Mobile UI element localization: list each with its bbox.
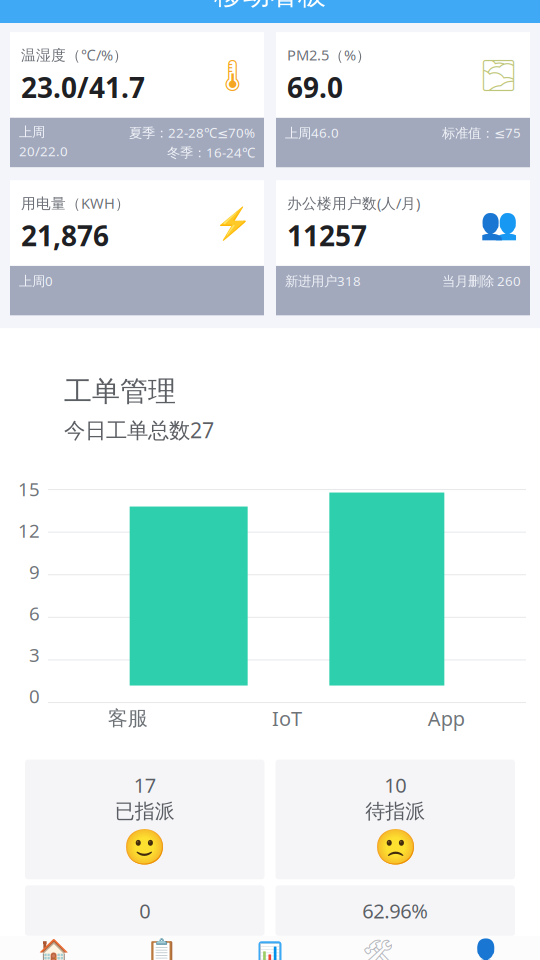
staticText: 23.0/41.7 — [21, 69, 145, 106]
button[interactable]: 📋 — [108, 935, 216, 960]
button[interactable]: 📊 — [216, 935, 324, 960]
staticText: 移动看板 — [214, 0, 326, 12]
staticText: 3 — [29, 642, 40, 667]
button[interactable]: 办公楼用户数(人/月) — [276, 180, 530, 315]
staticText: 6 — [29, 601, 40, 626]
staticText: 工单管理 — [64, 374, 176, 409]
staticText: 夏季：22-28℃≤70% — [129, 124, 255, 141]
staticText: 📋 — [146, 938, 178, 960]
staticText: 15 — [18, 477, 40, 501]
staticText: PM2.5（%） — [287, 45, 371, 65]
staticText: 11257 — [287, 217, 367, 254]
staticText: 上周46.0 — [285, 124, 339, 141]
button[interactable]: 👤 — [432, 935, 540, 960]
staticText: 21,876 — [21, 217, 109, 254]
button[interactable]: PM2.5（%） — [276, 32, 530, 167]
button[interactable]: 17 — [25, 760, 264, 879]
staticText: 12 — [18, 518, 40, 543]
staticText: 20/22.0 — [19, 142, 68, 160]
staticText: 0 — [29, 684, 40, 708]
staticText: 冬季：16-24℃ — [167, 143, 255, 161]
staticText: 🌡 — [213, 58, 252, 93]
staticText: App — [428, 705, 465, 732]
staticText: 69.0 — [287, 69, 343, 106]
staticText: 🏠 — [38, 938, 70, 960]
staticText: 温湿度（℃/%） — [21, 45, 128, 65]
staticText: 已指派 — [115, 799, 175, 824]
staticText: 👥 — [480, 206, 518, 241]
staticText: 客服 — [108, 706, 148, 731]
staticText: 🌫 — [479, 58, 518, 93]
button[interactable]: 🛠 — [324, 935, 432, 960]
staticText: 当月删除 260 — [442, 272, 521, 290]
staticText: 上周 — [19, 124, 45, 140]
button[interactable]: 0 — [25, 885, 264, 936]
staticText: 0 — [139, 897, 150, 924]
staticText: 👤 — [470, 938, 502, 960]
button[interactable]: 温湿度（℃/%） — [10, 32, 264, 167]
staticText: 9 — [29, 559, 40, 584]
staticText: 标准值：≤75 — [442, 124, 521, 141]
button[interactable]: 10 — [275, 760, 515, 879]
button[interactable]: 🏠 — [0, 935, 108, 960]
staticText: 17 — [134, 772, 156, 798]
staticText: 📊 — [259, 943, 281, 960]
button[interactable]: 62.96% — [275, 885, 515, 936]
staticText: 办公楼用户数(人/月) — [287, 193, 420, 213]
staticText: 62.96% — [362, 897, 428, 924]
staticText: 今日工单总数27 — [64, 416, 214, 444]
staticText: 上周0 — [19, 272, 53, 290]
staticText: 🛠 — [362, 938, 394, 960]
staticText: 用电量（KWH） — [21, 193, 130, 213]
staticText: 🙁 — [374, 828, 417, 867]
staticText: IoT — [272, 705, 302, 732]
staticText: ⚡ — [214, 206, 252, 241]
staticText: 🙂 — [123, 828, 166, 867]
button[interactable]: 用电量（KWH） — [10, 180, 264, 315]
staticText: 10 — [384, 772, 406, 798]
staticText: 待指派 — [365, 799, 425, 824]
staticText: 新进用户318 — [285, 272, 361, 290]
